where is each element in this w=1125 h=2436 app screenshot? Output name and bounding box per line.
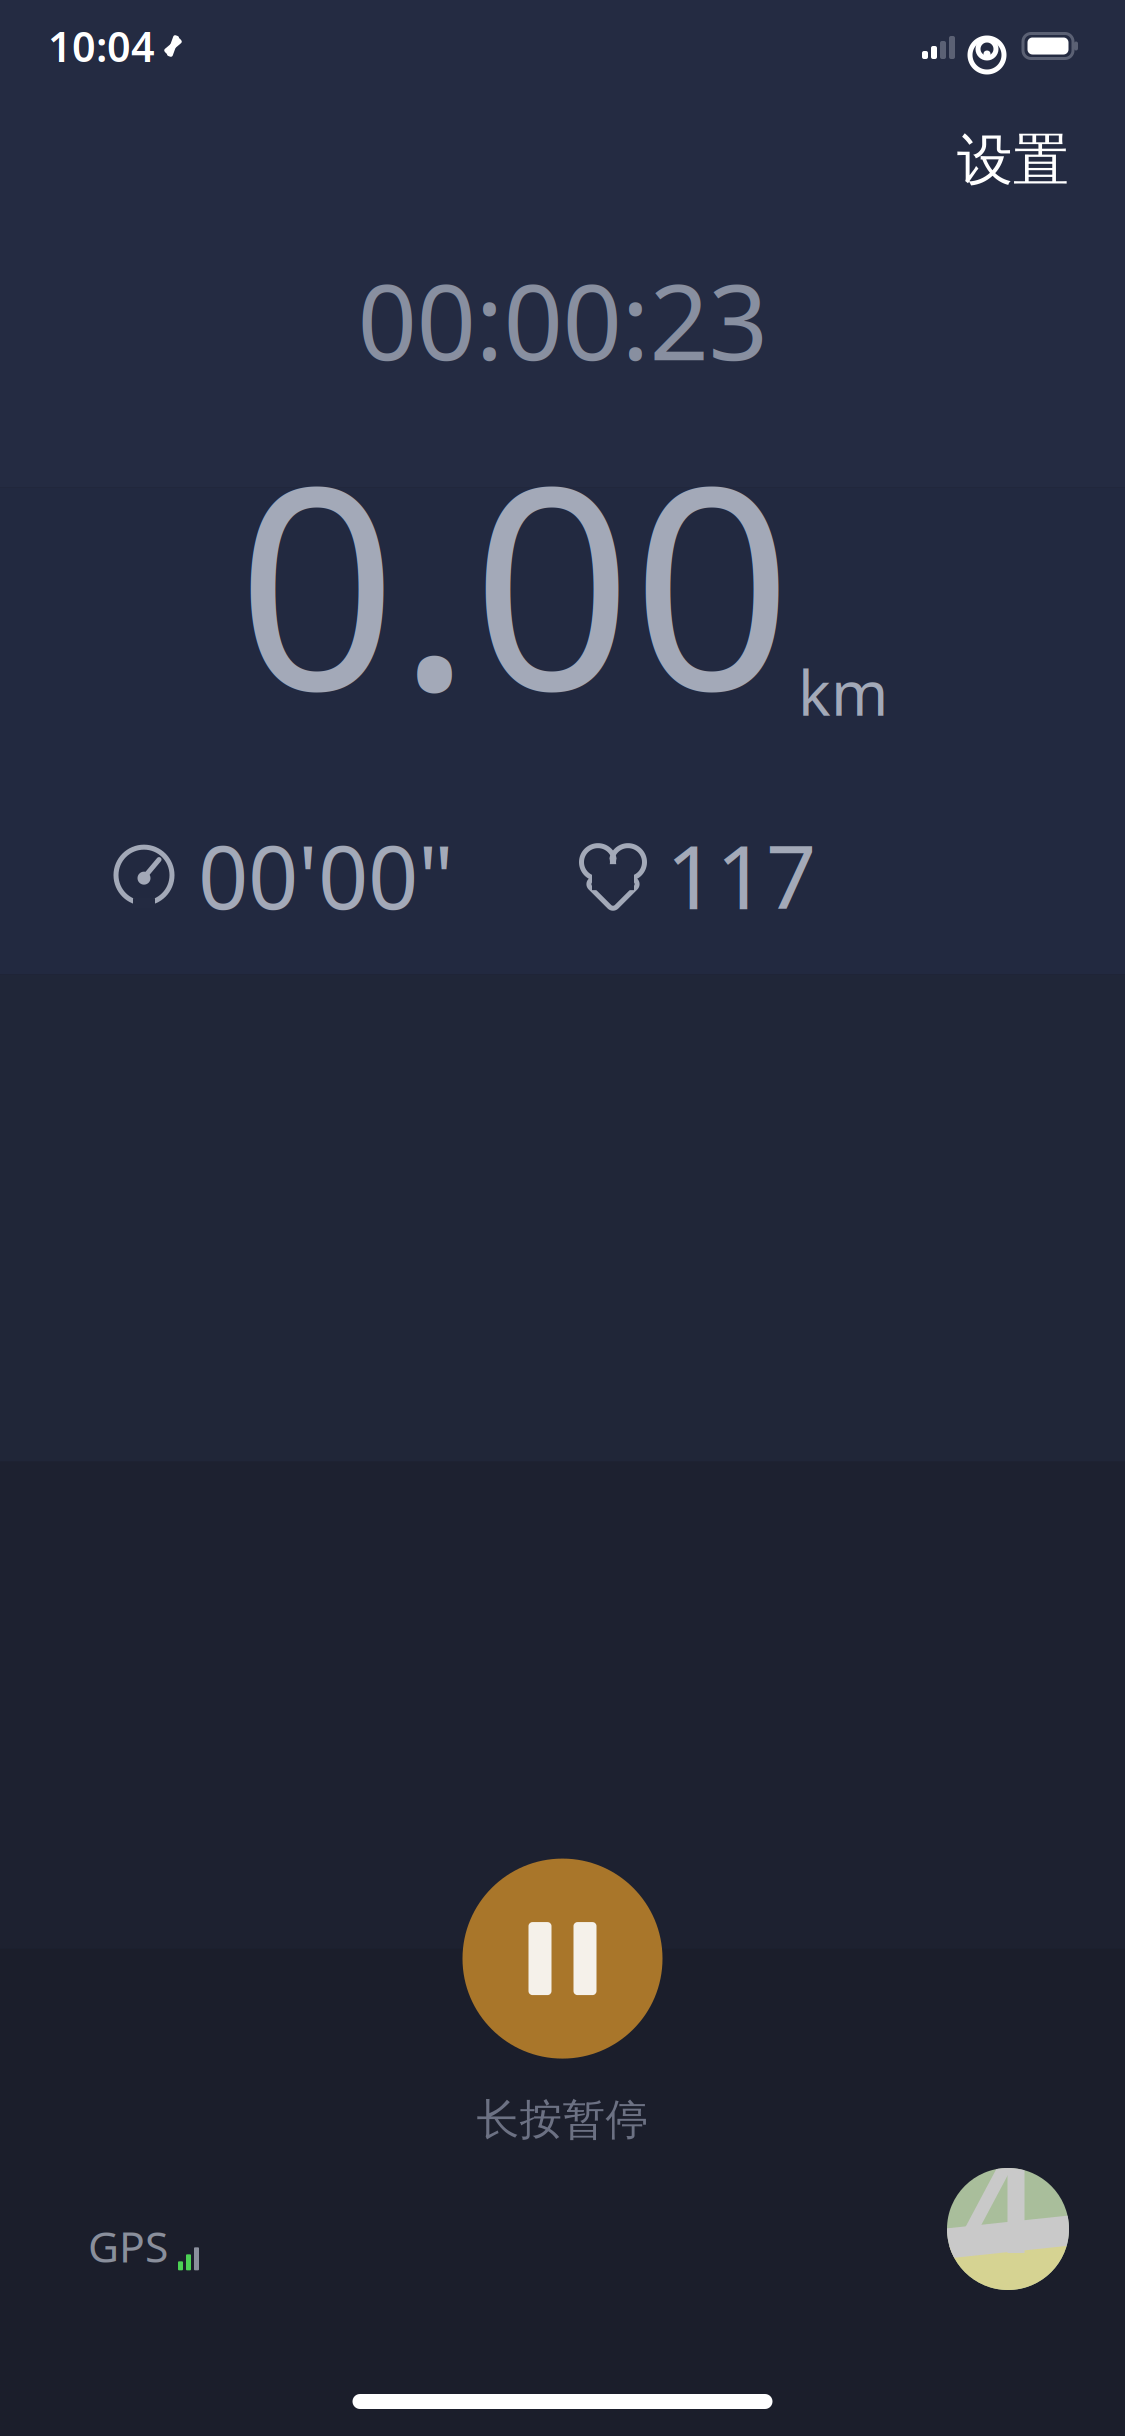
staticText: km — [798, 651, 888, 733]
staticText: 设置 — [957, 126, 1069, 195]
staticText: 00'00" — [198, 817, 454, 934]
staticText: 00:00:23 — [357, 251, 767, 389]
staticText: GPS — [88, 2218, 168, 2274]
staticText: 0.00 — [237, 395, 792, 767]
staticText: 117 — [666, 817, 816, 934]
button[interactable]: 设置 — [939, 116, 1087, 205]
button[interactable]: Pause — [457, 1854, 667, 2064]
staticText: 10:04 — [48, 19, 155, 73]
staticText: 长按暂停 — [476, 2094, 648, 2146]
button[interactable]: Map — [947, 2168, 1069, 2290]
